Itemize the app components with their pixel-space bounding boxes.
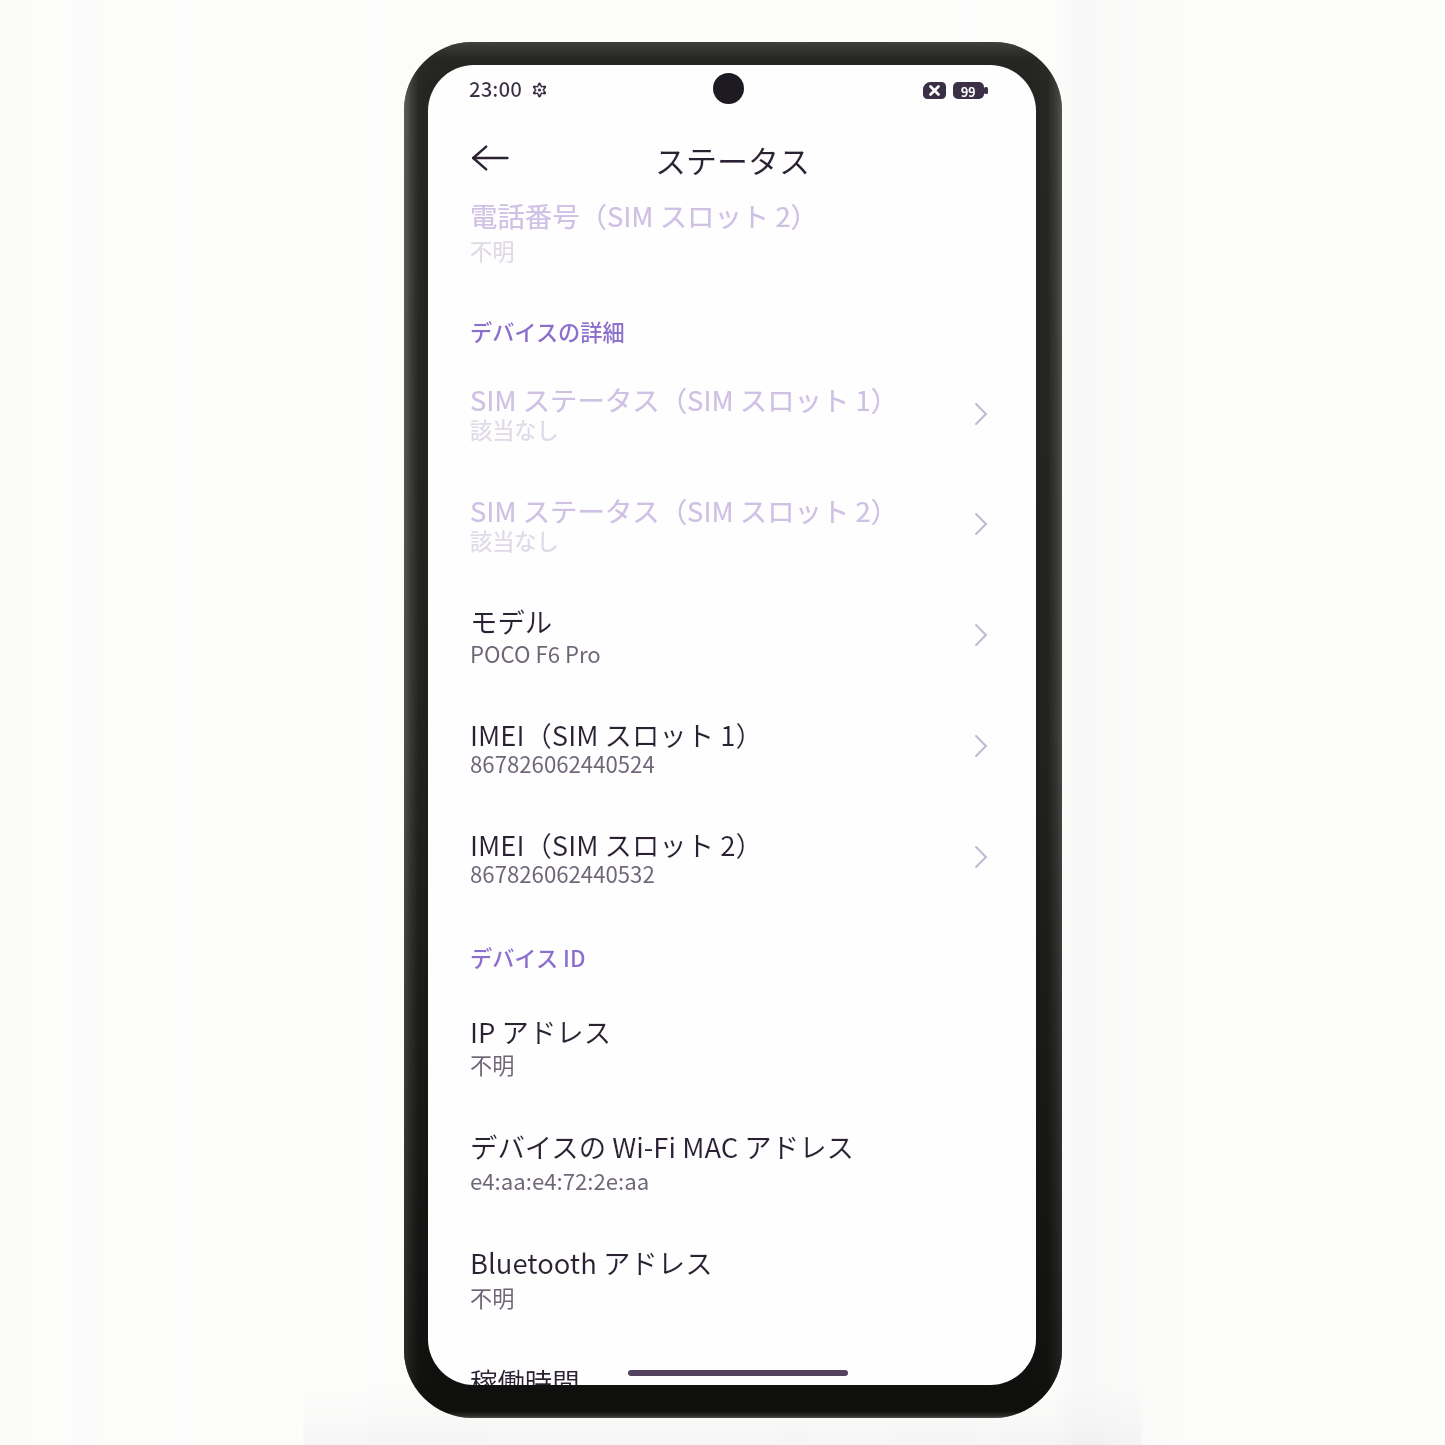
- staticText: 稼働時間: [470, 1361, 580, 1385]
- staticText: 不明: [470, 1281, 515, 1313]
- staticText: 不明: [470, 234, 515, 266]
- staticText: 867826062440524: [470, 747, 655, 779]
- staticText: 99: [961, 82, 976, 99]
- staticText: SIM ステータス（SIM スロット 2）: [470, 490, 899, 530]
- staticText: 該当なし: [470, 413, 559, 445]
- staticText: ステータス: [655, 137, 810, 182]
- staticText: 不明: [470, 1048, 515, 1080]
- button[interactable]: IP アドレス: [428, 995, 1036, 1087]
- staticText: 該当なし: [470, 524, 559, 556]
- button[interactable]: 稼働時間: [428, 1345, 1036, 1385]
- staticText: Bluetooth アドレス: [470, 1242, 713, 1282]
- staticText: デバイスの Wi-Fi MAC アドレス: [470, 1126, 854, 1166]
- button[interactable]: 電話番号（SIM スロット 2）: [428, 179, 1036, 271]
- button[interactable]: Back: [458, 129, 522, 187]
- button[interactable]: IMEI（SIM スロット 2）: [428, 808, 1036, 900]
- staticText: IMEI（SIM スロット 1）: [470, 714, 763, 754]
- staticText: IP アドレス: [470, 1011, 612, 1051]
- button[interactable]: モデル: [428, 585, 1036, 677]
- staticText: IMEI（SIM スロット 2）: [470, 824, 763, 864]
- staticText: デバイスの詳細: [470, 315, 625, 347]
- staticText: モデル: [470, 601, 553, 641]
- button[interactable]: デバイスの Wi-Fi MAC アドレス: [428, 1110, 1036, 1202]
- staticText: SIM ステータス（SIM スロット 1）: [470, 379, 899, 419]
- staticText: デバイス ID: [470, 941, 586, 973]
- button[interactable]: IMEI（SIM スロット 1）: [428, 698, 1036, 790]
- button[interactable]: Bluetooth アドレス: [428, 1226, 1036, 1318]
- button[interactable]: SIM ステータス（SIM スロット 2）: [428, 474, 1036, 566]
- staticText: 23:00: [469, 73, 522, 103]
- staticText: e4:aa:e4:72:2e:aa: [470, 1164, 650, 1196]
- button[interactable]: SIM ステータス（SIM スロット 1）: [428, 363, 1036, 455]
- staticText: 867826062440532: [470, 857, 655, 889]
- staticText: 電話番号（SIM スロット 2）: [470, 195, 818, 235]
- staticText: POCO F6 Pro: [470, 637, 601, 669]
